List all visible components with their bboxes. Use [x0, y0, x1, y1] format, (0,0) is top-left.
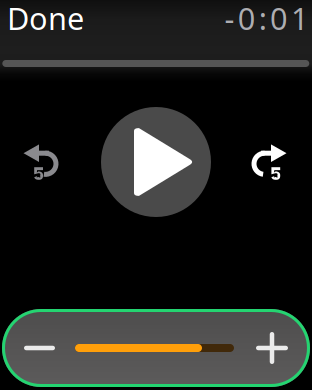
button[interactable]: Skip forward 5 seconds	[249, 140, 289, 180]
staticText: -	[225, 0, 235, 38]
staticText: 0	[270, 0, 288, 38]
button[interactable]: Volume	[2, 309, 310, 387]
staticText: 1	[291, 0, 309, 38]
staticText: Done	[7, 0, 84, 38]
staticText: :	[259, 0, 267, 38]
button[interactable]: Play	[101, 107, 211, 217]
button[interactable]: Skip back 5 seconds	[21, 140, 61, 180]
staticText: 0	[238, 0, 256, 38]
button[interactable]: Done	[0, 0, 84, 44]
